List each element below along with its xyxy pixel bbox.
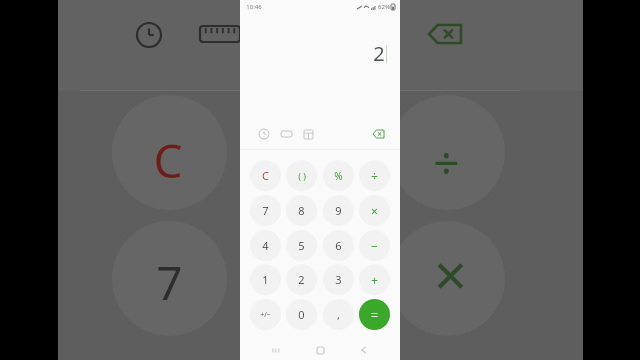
staticText: 3: [335, 272, 342, 287]
staticText: C: [262, 168, 269, 183]
staticText: 6: [335, 238, 342, 253]
staticText: 5: [298, 238, 305, 253]
button[interactable]: Recents: [268, 342, 284, 358]
staticText: ✕: [432, 251, 469, 302]
button[interactable]: C: [250, 160, 281, 191]
staticText: 7: [156, 251, 183, 314]
button[interactable]: 3: [323, 264, 354, 295]
button[interactable]: +/−: [250, 299, 281, 330]
staticText: 8: [298, 203, 305, 218]
button[interactable]: 9: [323, 195, 354, 226]
staticText: ÷: [371, 168, 378, 184]
button[interactable]: =: [359, 299, 390, 330]
button[interactable]: Back: [356, 342, 372, 358]
staticText: ,: [337, 307, 340, 322]
button[interactable]: %: [323, 160, 354, 191]
button[interactable]: ÷: [359, 160, 390, 191]
staticText: 7: [262, 203, 269, 218]
button[interactable]: ×: [359, 195, 390, 226]
button[interactable]: ,: [323, 299, 354, 330]
staticText: 4: [262, 238, 269, 253]
staticText: ×: [371, 203, 378, 219]
staticText: 9: [335, 203, 342, 218]
staticText: 2: [298, 272, 305, 287]
staticText: C: [153, 129, 183, 192]
staticText: 10:46: [246, 3, 262, 11]
staticText: %: [334, 169, 343, 183]
button[interactable]: 7: [250, 195, 281, 226]
staticText: 1: [262, 272, 269, 287]
staticText: ÷: [433, 131, 460, 194]
button[interactable]: Backspace: [370, 126, 386, 142]
button[interactable]: 6: [323, 230, 354, 261]
staticText: ( ): [298, 170, 306, 182]
staticText: =: [371, 307, 378, 323]
button[interactable]: Unit converter: [278, 126, 294, 142]
staticText: 62%: [378, 3, 390, 11]
button[interactable]: History: [256, 126, 272, 142]
staticText: +/−: [260, 310, 271, 320]
button[interactable]: 0: [286, 299, 317, 330]
button[interactable]: 5: [286, 230, 317, 261]
staticText: −: [371, 238, 378, 254]
button[interactable]: 8: [286, 195, 317, 226]
button[interactable]: 4: [250, 230, 281, 261]
staticText: 0: [298, 307, 305, 322]
button[interactable]: 1: [250, 264, 281, 295]
button[interactable]: 2: [286, 264, 317, 295]
button[interactable]: Scientific calculator: [300, 126, 316, 142]
staticText: +: [371, 272, 378, 288]
button[interactable]: +: [359, 264, 390, 295]
button[interactable]: −: [359, 230, 390, 261]
button[interactable]: Home: [312, 342, 328, 358]
button[interactable]: ( ): [286, 160, 317, 191]
staticText: 2: [373, 40, 385, 67]
